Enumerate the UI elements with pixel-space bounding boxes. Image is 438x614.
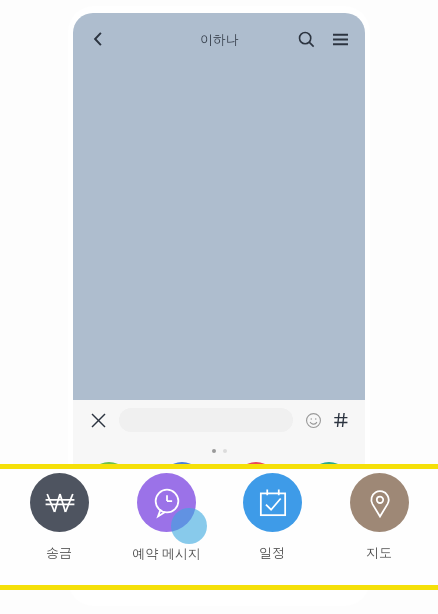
button[interactable]: 예약 메시지 xyxy=(118,473,214,562)
button[interactable]: Hashtag xyxy=(327,406,355,434)
button[interactable]: 일정 xyxy=(224,473,320,560)
button[interactable]: Back xyxy=(79,20,117,58)
button[interactable]: More xyxy=(307,462,351,506)
staticText: 지도 xyxy=(366,544,392,560)
staticText: 송금 xyxy=(46,544,72,560)
staticText: 예약 메시지 xyxy=(132,544,201,562)
button[interactable]: Gift xyxy=(234,462,278,506)
button[interactable]: Gallery xyxy=(87,462,131,506)
button[interactable]: 지도 xyxy=(331,473,427,560)
button[interactable]: Close xyxy=(83,405,113,435)
button[interactable]: Search xyxy=(289,22,323,56)
staticText: 이하나 xyxy=(200,31,239,47)
staticText: 일정 xyxy=(259,544,285,560)
button[interactable]: Menu xyxy=(323,22,357,56)
button[interactable]: Camera xyxy=(160,462,204,506)
button[interactable]: Emoji xyxy=(299,406,327,434)
button[interactable]: 송금 xyxy=(11,473,107,560)
